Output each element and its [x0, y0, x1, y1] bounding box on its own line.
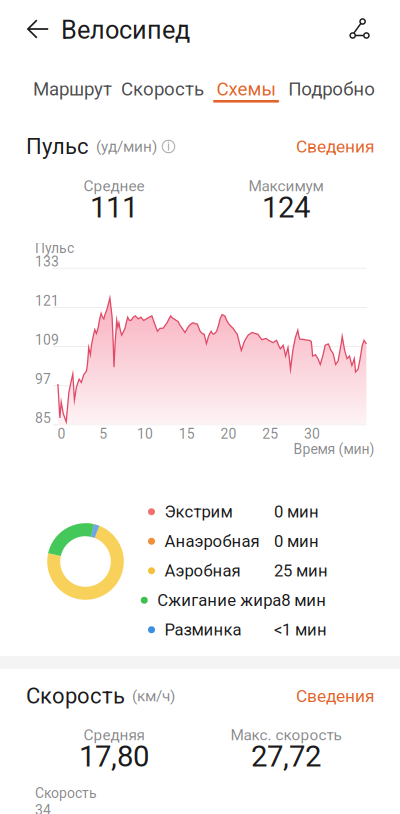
staticText: 5	[99, 426, 107, 442]
staticText: 109	[35, 332, 59, 348]
staticText: Экстрим	[164, 502, 232, 521]
button[interactable]: Подробно	[288, 78, 375, 110]
staticText: Пульс	[26, 134, 89, 159]
staticText: 85	[35, 410, 51, 426]
button[interactable]: Скорость	[121, 78, 204, 110]
staticText: 133	[35, 254, 59, 270]
staticText: Средняя	[83, 726, 144, 744]
button[interactable]: Поделиться	[337, 7, 381, 51]
staticText: Пульс	[35, 240, 74, 256]
staticText: 34	[35, 802, 51, 814]
staticText: Аэробная	[164, 561, 240, 580]
staticText: Макс. скорость	[230, 726, 341, 744]
staticText: 10	[137, 426, 153, 442]
staticText: 27,72	[251, 739, 321, 774]
staticText: 97	[35, 371, 51, 387]
staticText: 124	[262, 190, 310, 225]
button[interactable]: Схемы	[213, 78, 279, 110]
staticText: Время (мин)	[293, 441, 374, 457]
staticText: 0	[57, 426, 65, 442]
staticText: Скорость	[121, 78, 204, 100]
staticText: Среднее	[83, 177, 144, 195]
button[interactable]: Назад	[16, 7, 60, 51]
staticText: Сжигание жира	[157, 590, 281, 610]
staticText: 0 мин	[274, 502, 319, 521]
staticText: Максимум	[248, 177, 323, 195]
staticText: 30	[304, 426, 320, 442]
staticText: 121	[35, 293, 59, 309]
staticText: 20	[220, 426, 236, 442]
staticText: 25	[262, 426, 278, 442]
staticText: 0 мин	[274, 531, 319, 551]
staticText: (уд/мин)	[96, 137, 157, 155]
staticText: 15	[179, 426, 195, 442]
staticText: 17,80	[79, 739, 149, 774]
staticText: <1 мин	[274, 620, 327, 639]
button[interactable]: Маршрут	[33, 78, 112, 110]
staticText: Сведения	[296, 686, 375, 706]
staticText: Разминка	[164, 620, 241, 639]
staticText: i	[167, 139, 170, 154]
staticText: Сведения	[296, 136, 375, 157]
staticText: (км/ч)	[132, 687, 175, 705]
staticText: Анаэробная	[164, 531, 259, 551]
staticText: 25 мин	[274, 561, 328, 580]
staticText: Маршрут	[33, 78, 112, 100]
button[interactable]: Сведения	[296, 686, 375, 706]
staticText: 8 мин	[281, 590, 326, 610]
staticText: Подробно	[288, 78, 375, 100]
staticText: 111	[90, 190, 138, 225]
staticText: Скорость	[26, 683, 125, 709]
staticText: Велосипед	[61, 15, 190, 45]
button[interactable]: Сведения	[296, 136, 375, 157]
staticText: Скорость	[35, 785, 97, 801]
staticText: Схемы	[217, 78, 276, 100]
